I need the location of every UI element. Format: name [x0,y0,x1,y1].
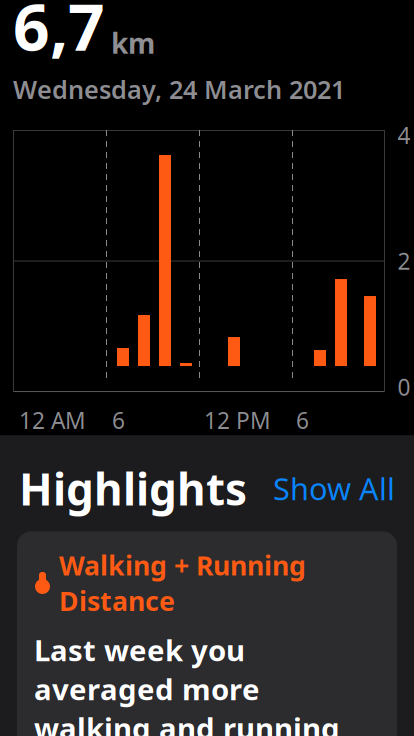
staticText: 12 PM [204,405,271,435]
button[interactable]: Walking + Running Distance [17,532,397,736]
staticText: 2 [397,246,410,276]
staticText: Last week you averaged more walking and … [34,630,340,736]
button[interactable]: Show All [263,462,395,515]
staticText: Highlights [19,459,247,517]
staticText: 4 [397,120,410,150]
staticText: 6 [112,405,125,435]
staticText: Wednesday, 24 March 2021 [13,72,345,106]
staticText: Walking + Running Distance [59,548,306,618]
staticText: 6,7 [13,0,105,68]
staticText: km [111,24,155,61]
staticText: Show All [273,468,395,509]
staticText: 12 AM [19,405,86,435]
staticText: 0 [397,372,410,402]
staticText: 6 [296,405,309,435]
